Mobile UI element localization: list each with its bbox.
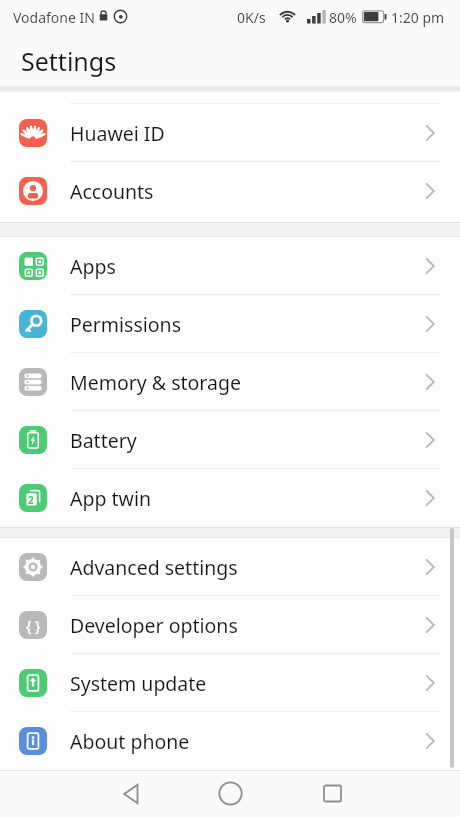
staticText: Permissions	[70, 311, 182, 338]
staticText: 0K/s	[237, 8, 266, 27]
staticText: Vodafone IN	[13, 8, 95, 27]
staticText: About phone	[70, 728, 190, 755]
staticText: { }	[26, 616, 41, 635]
button[interactable]: Advanced settings	[0, 538, 460, 596]
staticText: 1:20 pm	[391, 8, 445, 27]
button[interactable]: 2	[0, 469, 460, 527]
button[interactable]: Battery	[0, 411, 460, 469]
staticText: Advanced settings	[70, 554, 238, 581]
button[interactable]: Permissions	[0, 295, 460, 353]
button[interactable]	[287, 770, 377, 817]
staticText: Settings	[21, 44, 117, 78]
staticText: System update	[70, 670, 207, 697]
button[interactable]: System update	[0, 654, 460, 712]
button[interactable]: Accounts	[0, 162, 460, 220]
button[interactable]: Memory & storage	[0, 353, 460, 411]
button[interactable]: Huawei ID	[0, 104, 460, 162]
button[interactable]	[86, 770, 176, 817]
staticText: 2	[28, 493, 34, 507]
staticText: Apps	[70, 253, 116, 280]
button[interactable]: { }	[0, 596, 460, 654]
staticText: App twin	[70, 485, 151, 512]
staticText: 80%	[329, 8, 357, 27]
staticText: Developer options	[70, 612, 238, 639]
button[interactable]	[185, 770, 275, 817]
staticText: Battery	[70, 427, 137, 454]
button[interactable]: About phone	[0, 712, 460, 770]
staticText: Huawei ID	[70, 120, 165, 147]
button[interactable]: Apps	[0, 237, 460, 295]
staticText: Memory & storage	[70, 369, 241, 396]
staticText: Accounts	[70, 178, 154, 205]
